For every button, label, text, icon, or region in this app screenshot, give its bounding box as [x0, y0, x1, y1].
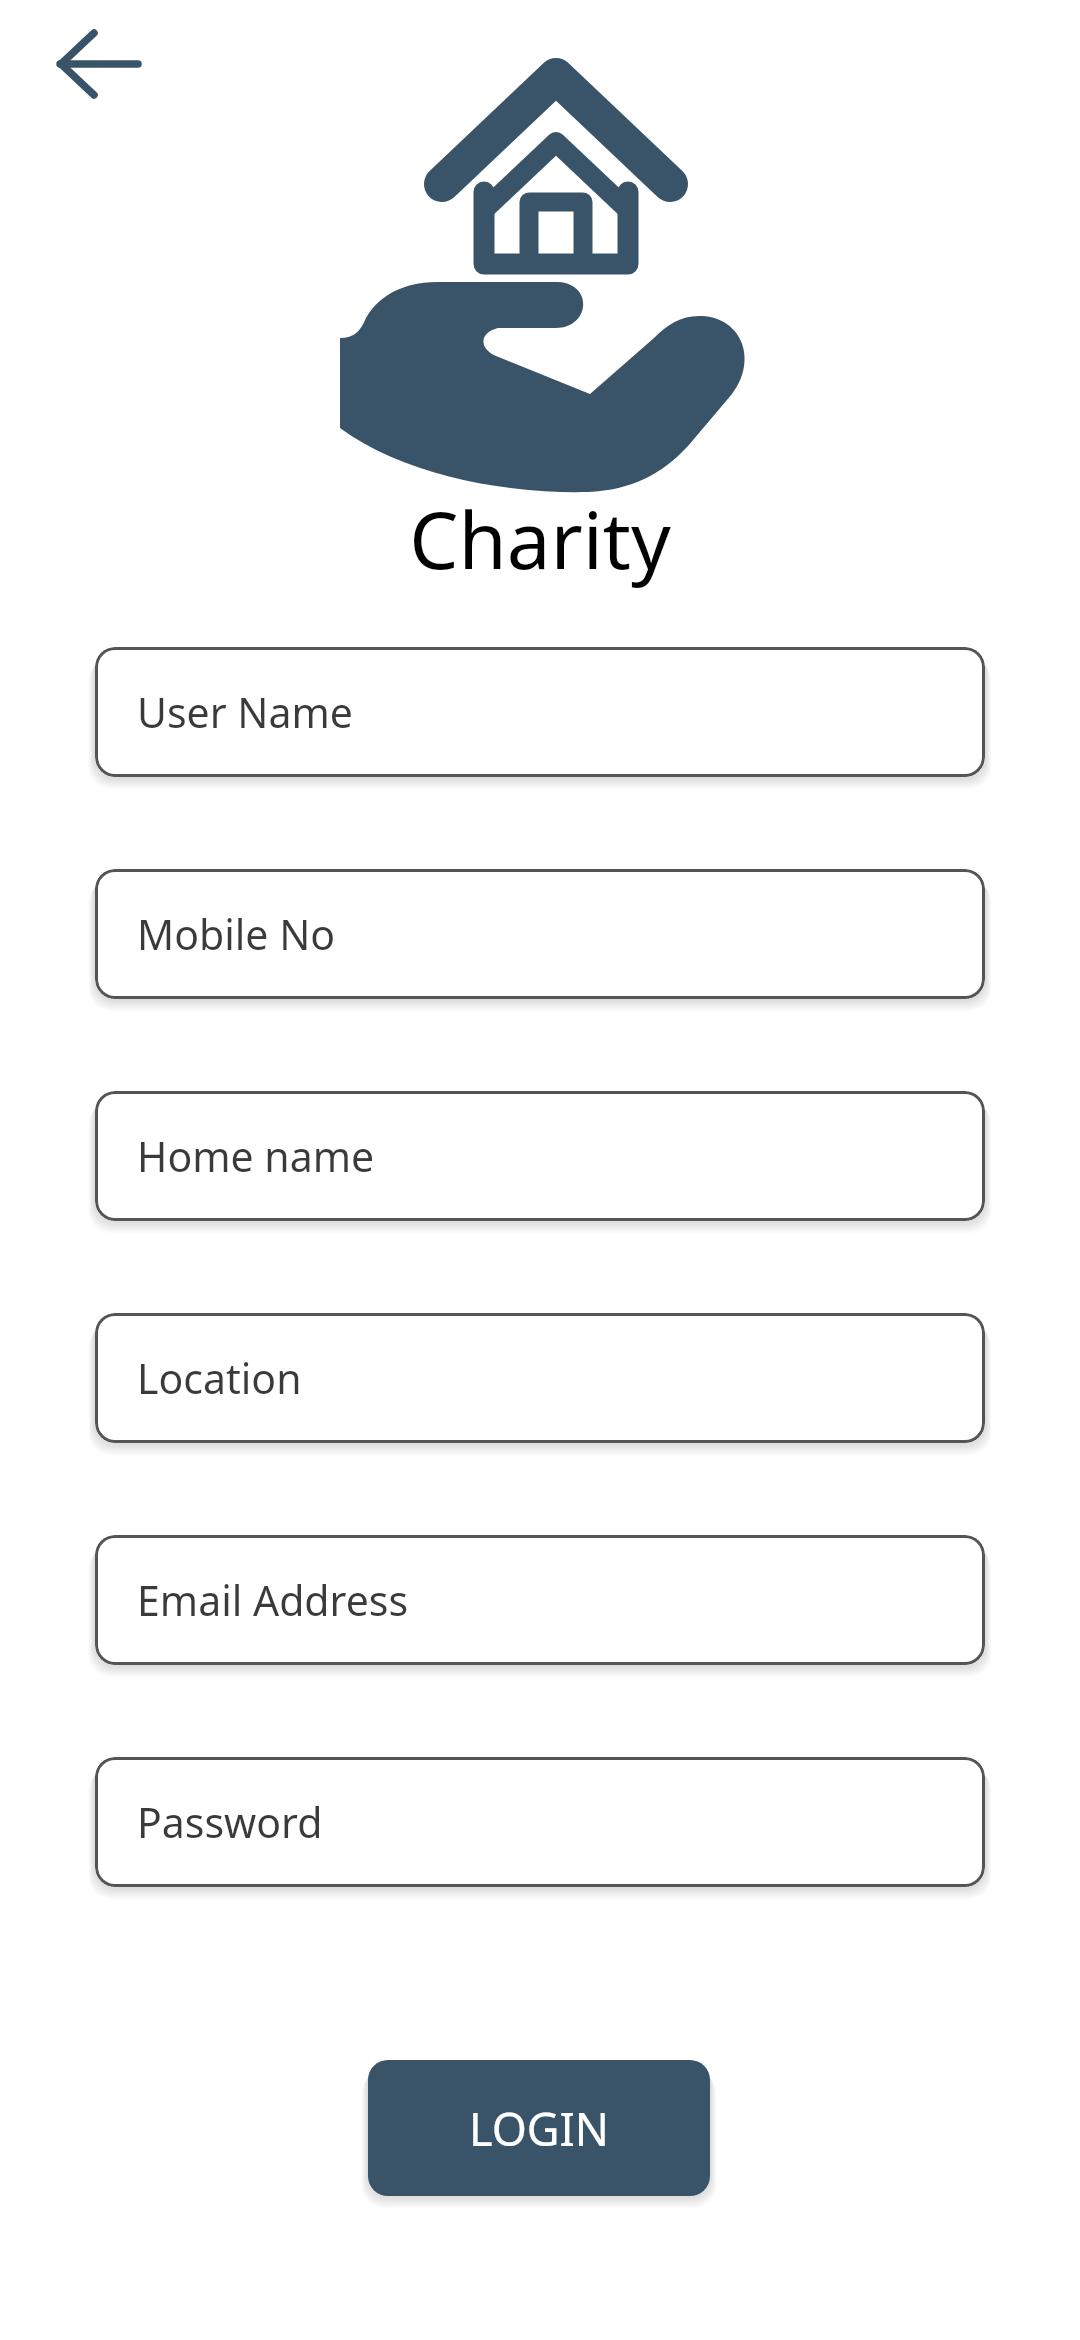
button[interactable]: Back [28, 16, 140, 112]
staticText: Email Address [137, 1572, 409, 1628]
staticText: Mobile No [137, 906, 336, 962]
button[interactable]: Email Address [95, 1535, 985, 1665]
staticText: Password [137, 1794, 323, 1850]
staticText: LOGIN [469, 2098, 610, 2159]
button[interactable]: Home name [95, 1091, 985, 1221]
button[interactable]: Location [95, 1313, 985, 1443]
button[interactable]: Password [95, 1757, 985, 1887]
button[interactable]: Mobile No [95, 869, 985, 999]
staticText: Location [137, 1350, 302, 1406]
button[interactable]: User Name [95, 647, 985, 777]
button[interactable]: LOGIN [368, 2060, 710, 2196]
staticText: Home name [137, 1128, 375, 1184]
staticText: User Name [137, 684, 353, 740]
staticText: Charity [0, 486, 1080, 592]
